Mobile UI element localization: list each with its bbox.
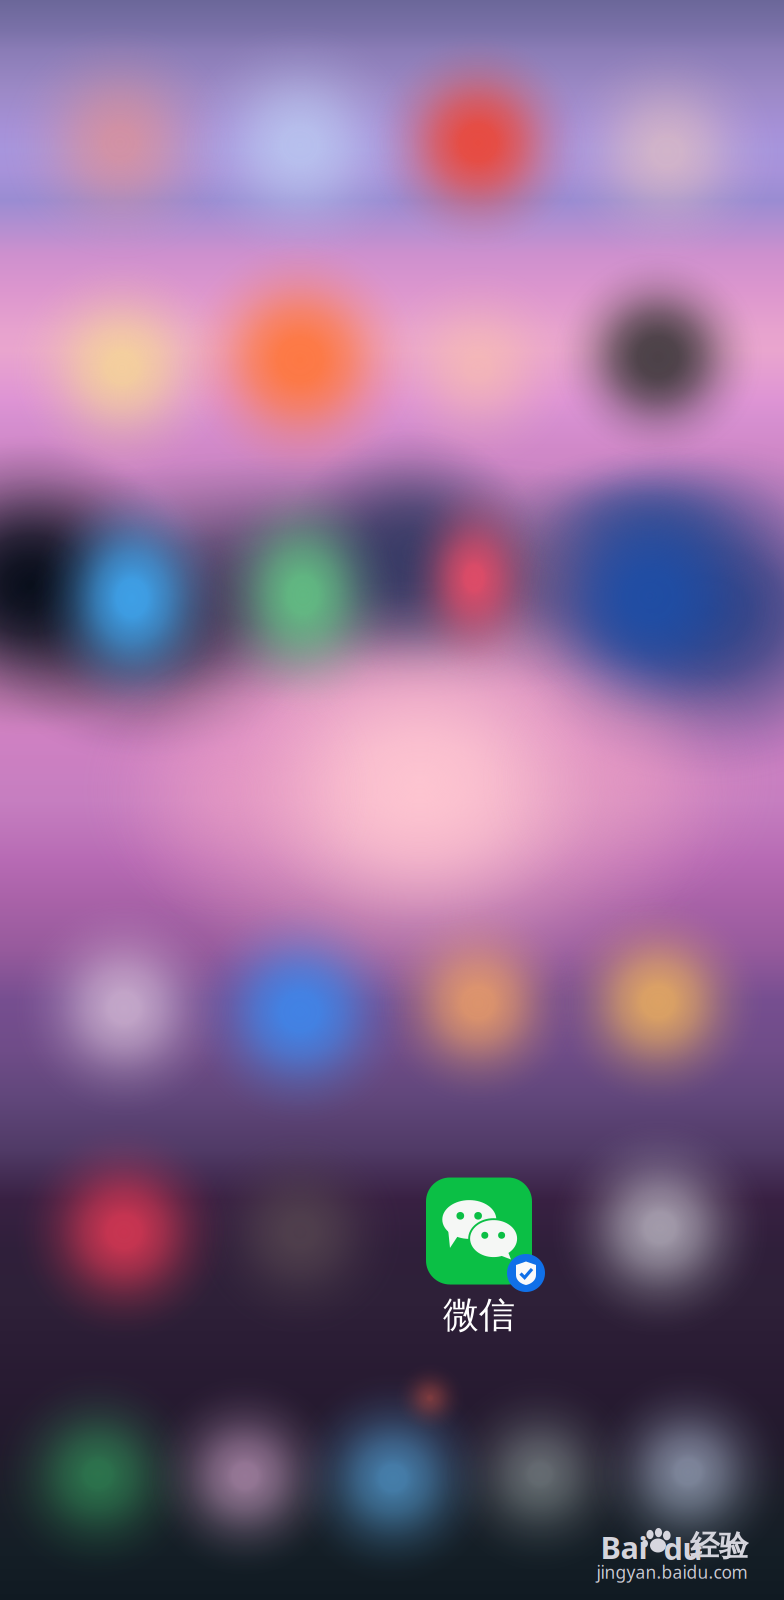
staticText: 经验 [690,1528,748,1564]
staticText: Bai [600,1527,647,1567]
button[interactable]: WeChat [0,0,784,1600]
staticText: 微信 [443,1293,515,1337]
staticText: du [663,1528,702,1568]
staticText: jingyan.baidu.com [596,1560,747,1583]
